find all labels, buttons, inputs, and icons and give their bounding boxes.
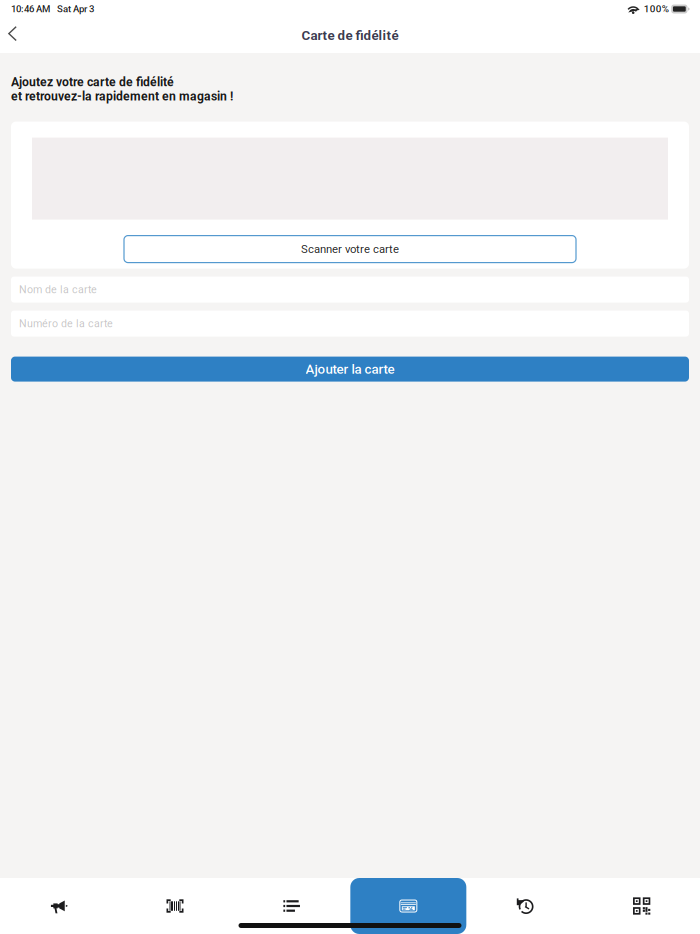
staticText: 10:46 AM (11, 3, 50, 15)
button[interactable]: QR Code (583, 878, 700, 934)
staticText: Carte de fidélité (301, 28, 398, 43)
staticText: Numéro de la carte (19, 317, 113, 330)
button[interactable]: Carte de fidélité (350, 878, 467, 934)
staticText: Scanner votre carte (301, 242, 399, 256)
staticText: Sat Apr 3 (57, 3, 94, 15)
button[interactable]: Historique (467, 878, 583, 934)
button[interactable]: Back (0, 10, 25, 61)
button[interactable]: Offres (0, 878, 117, 934)
button[interactable]: Liste de courses (233, 878, 350, 934)
button[interactable]: Scanner un code-barres (117, 878, 233, 934)
staticText: 100% (644, 3, 669, 15)
staticText: Ajoutez votre carte de fidélité et retro… (11, 75, 233, 104)
button[interactable]: Ajouter la carte (11, 357, 689, 382)
staticText: Nom de la carte (19, 283, 97, 296)
button[interactable]: Scanner votre carte (124, 236, 576, 263)
staticText: Ajouter la carte (305, 361, 394, 377)
